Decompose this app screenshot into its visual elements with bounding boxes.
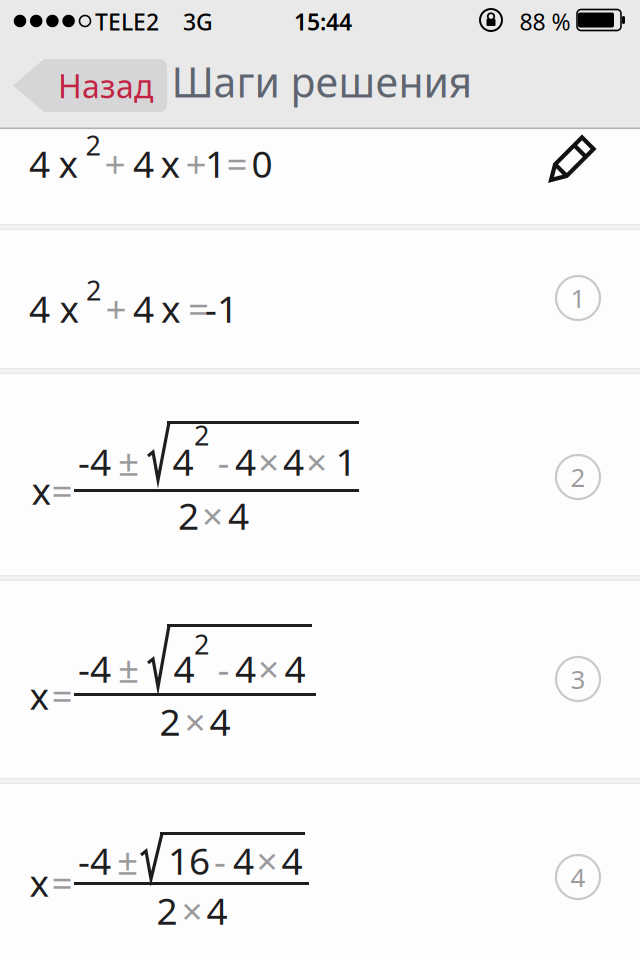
staticText: =	[188, 283, 209, 334]
staticText: 2	[194, 417, 209, 454]
staticText: TELE2	[95, 6, 159, 37]
staticText: =	[51, 670, 72, 721]
staticText: 4	[173, 643, 194, 694]
staticText: 4	[206, 885, 227, 936]
button[interactable]	[0, 784, 640, 960]
staticText: ±	[118, 436, 139, 487]
staticText: ±	[118, 643, 139, 694]
staticText: 0	[251, 138, 272, 189]
staticText: 16	[168, 835, 210, 886]
staticText: 4	[209, 696, 230, 747]
staticText: 2	[159, 696, 180, 747]
staticText: ×	[181, 885, 202, 936]
staticText: =	[51, 465, 72, 516]
staticText: 3	[570, 661, 585, 697]
staticText: =	[51, 857, 72, 908]
button[interactable]	[0, 230, 640, 368]
staticText: -	[214, 835, 226, 886]
staticText: -	[217, 643, 229, 694]
staticText: 1	[335, 436, 356, 487]
staticText: ×	[306, 436, 327, 487]
staticText: 2	[156, 885, 177, 936]
staticText: -1	[205, 283, 238, 334]
staticText: -	[217, 436, 229, 487]
staticText: x	[58, 138, 78, 189]
staticText: -4	[78, 643, 111, 694]
staticText: ×	[256, 835, 277, 886]
staticText: 4	[235, 643, 256, 694]
staticText: 4	[570, 859, 585, 895]
staticText: 4	[228, 490, 249, 541]
staticText: 15:44	[294, 6, 352, 37]
staticText: 1	[570, 280, 585, 316]
staticText: x	[161, 283, 181, 334]
staticText: 4	[233, 835, 254, 886]
staticText: +	[104, 138, 125, 189]
staticText: 2	[86, 272, 101, 309]
staticText: x	[160, 138, 180, 189]
staticText: 4	[281, 835, 302, 886]
staticText: 4	[172, 436, 193, 487]
staticText: 4	[29, 138, 50, 189]
staticText: +	[185, 138, 206, 189]
staticText: 1	[205, 138, 226, 189]
staticText: 3G	[183, 6, 213, 37]
staticText: ±	[117, 835, 138, 886]
staticText: -4	[78, 436, 111, 487]
staticText: 2	[194, 626, 209, 663]
staticText: 2	[570, 459, 585, 495]
staticText: Шаги решения	[171, 54, 472, 109]
staticText: x	[31, 465, 51, 516]
staticText: ×	[184, 696, 205, 747]
button[interactable]	[0, 374, 640, 575]
button[interactable]: Назад	[13, 59, 167, 112]
staticText: 88 %	[519, 6, 570, 37]
staticText: ×	[258, 643, 279, 694]
staticText: x	[59, 283, 79, 334]
staticText: x	[29, 857, 49, 908]
button[interactable]	[0, 129, 640, 224]
staticText: 4	[133, 283, 154, 334]
staticText: 4	[235, 436, 256, 487]
button[interactable]	[0, 581, 640, 778]
staticText: ×	[202, 490, 223, 541]
staticText: ×	[258, 436, 279, 487]
staticText: 2	[178, 490, 199, 541]
staticText: 4	[284, 643, 305, 694]
staticText: =	[226, 138, 247, 189]
staticText: 4	[133, 138, 154, 189]
staticText: +	[105, 283, 126, 334]
staticText: 4	[29, 283, 50, 334]
button[interactable]	[541, 125, 605, 189]
staticText: Назад	[58, 64, 153, 108]
staticText: 2	[85, 127, 100, 164]
staticText: x	[29, 670, 49, 721]
staticText: 4	[283, 436, 304, 487]
staticText: -4	[78, 835, 111, 886]
